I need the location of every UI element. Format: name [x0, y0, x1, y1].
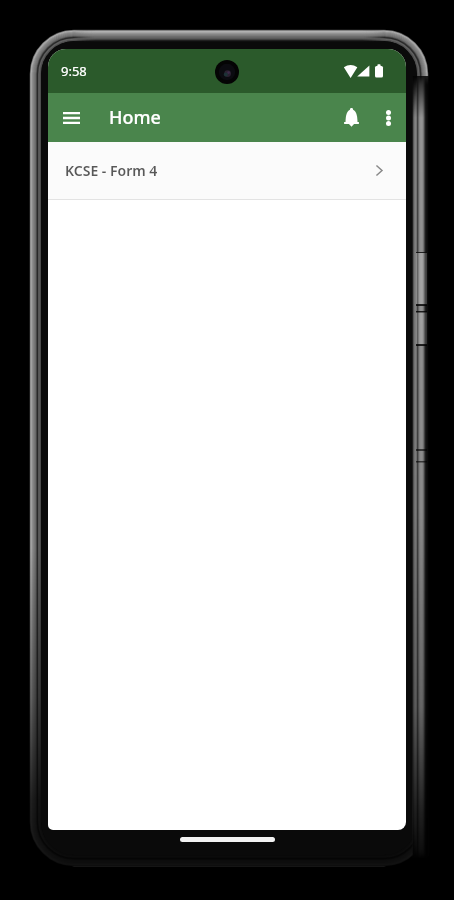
- button[interactable]: Open navigation menu: [51, 95, 92, 140]
- button[interactable]: Notifications: [331, 95, 371, 140]
- staticText: Home: [109, 105, 161, 130]
- staticText: KCSE - Form 4: [65, 161, 158, 180]
- button[interactable]: More options: [368, 95, 406, 140]
- button[interactable]: KCSE - Form 4: [48, 142, 406, 199]
- staticText: 9:58: [61, 62, 87, 80]
